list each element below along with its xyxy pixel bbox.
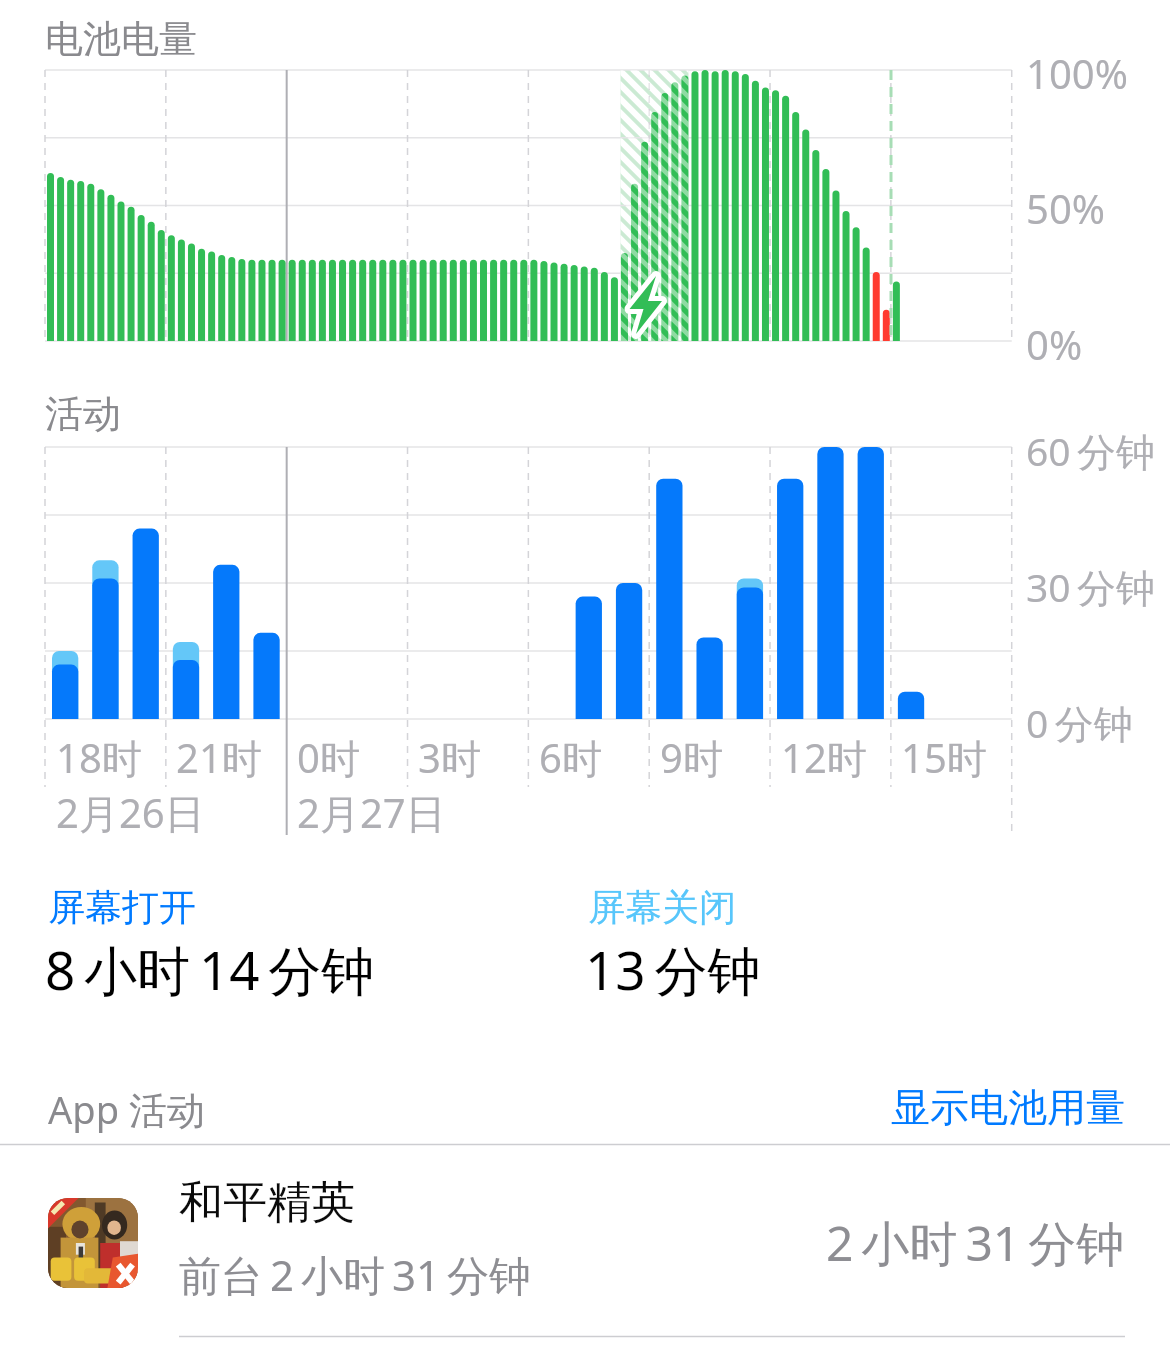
staticText: 100% [1026, 46, 1128, 100]
staticText: 15时 [901, 730, 987, 785]
staticText: 0 分钟 [1026, 696, 1133, 749]
staticText: 2 小时 31 分钟 [826, 1210, 1125, 1276]
staticText: 21时 [176, 730, 262, 785]
staticText: 8 小时 14 分钟 [45, 933, 375, 1005]
staticText: 13 分钟 [585, 933, 761, 1005]
staticText: App 活动 [48, 1083, 205, 1135]
staticText: 电池电量 [45, 15, 197, 63]
staticText: 屏幕打开 [48, 884, 196, 931]
staticText: 6时 [539, 730, 602, 785]
staticText: 和平精英 [179, 1175, 355, 1230]
button[interactable]: 显示电池用量 [891, 1083, 1125, 1132]
staticText: 0% [1026, 317, 1083, 371]
staticText: 60 分钟 [1026, 424, 1156, 477]
staticText: 18时 [56, 730, 142, 785]
staticText: 活动 [45, 390, 121, 438]
button[interactable]: 和平精英 [0, 1160, 1170, 1337]
staticText: 12时 [781, 730, 867, 785]
staticText: 2月27日 [297, 785, 446, 840]
button[interactable]: 屏幕关闭 [585, 880, 985, 1010]
staticText: 50% [1026, 181, 1105, 235]
staticText: 3时 [418, 730, 481, 785]
button[interactable]: 屏幕打开 [45, 880, 545, 1010]
staticText: 0时 [297, 730, 360, 785]
staticText: 屏幕关闭 [588, 884, 736, 931]
staticText: 前台 2 小时 31 分钟 [179, 1246, 531, 1303]
staticText: 30 分钟 [1026, 560, 1156, 613]
staticText: 2月26日 [56, 785, 205, 840]
staticText: 9时 [660, 730, 723, 785]
